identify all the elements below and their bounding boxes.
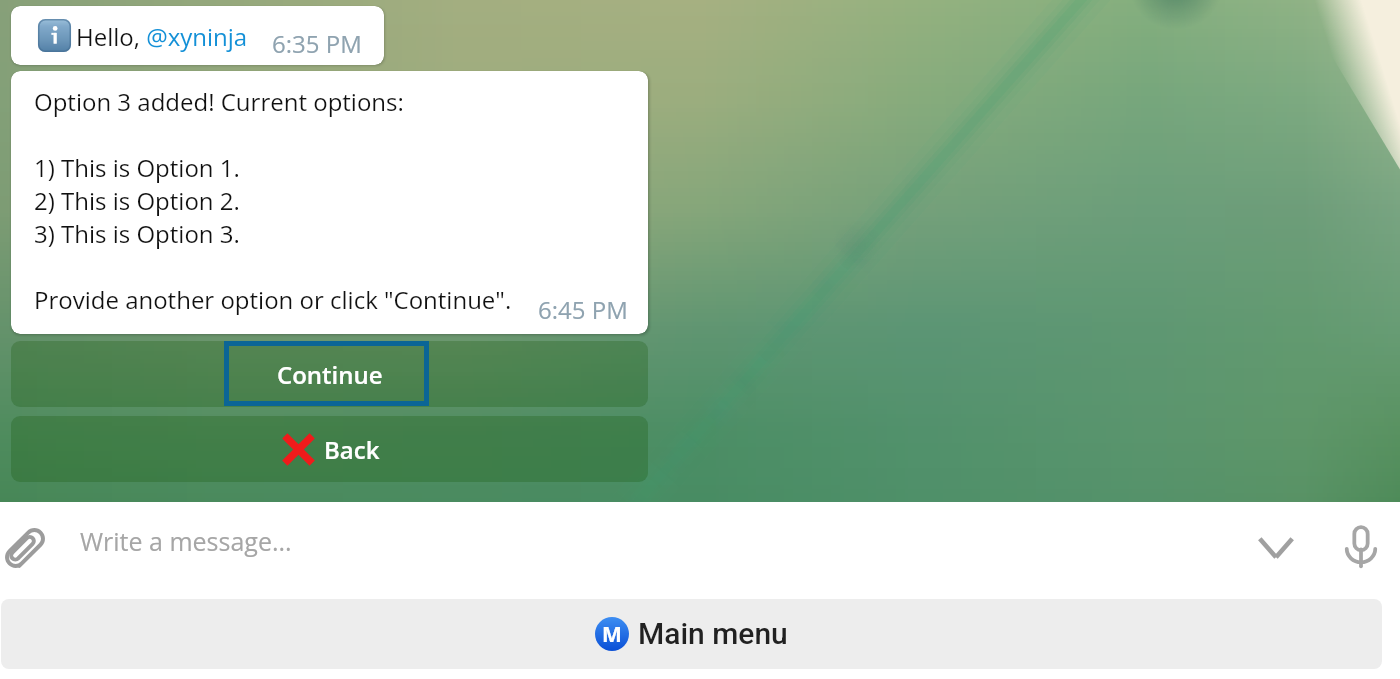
staticText: Option 3 added! Current options: 1) This… bbox=[34, 85, 512, 316]
button[interactable]: Option 3 added! Current options: 1) This… bbox=[11, 71, 648, 334]
button[interactable]: Hello, @xyninja bbox=[11, 6, 384, 65]
staticText: 6:45 PM bbox=[538, 293, 628, 326]
staticText: M bbox=[602, 620, 622, 649]
staticText: Hello, @xyninja bbox=[76, 20, 248, 53]
button[interactable]: Attach file bbox=[0, 513, 60, 583]
button[interactable]: M bbox=[1, 599, 1382, 669]
button[interactable]: Continue bbox=[11, 341, 648, 407]
button[interactable]: Back bbox=[11, 416, 648, 482]
button[interactable]: Hide keyboard bbox=[1241, 513, 1311, 583]
staticText: Continue bbox=[277, 358, 383, 391]
staticText: 6:35 PM bbox=[272, 27, 362, 60]
staticText: Write a message... bbox=[80, 524, 292, 558]
button[interactable]: Record voice message bbox=[1326, 512, 1396, 582]
staticText: Back bbox=[324, 433, 380, 466]
staticText: Main menu bbox=[638, 616, 788, 651]
